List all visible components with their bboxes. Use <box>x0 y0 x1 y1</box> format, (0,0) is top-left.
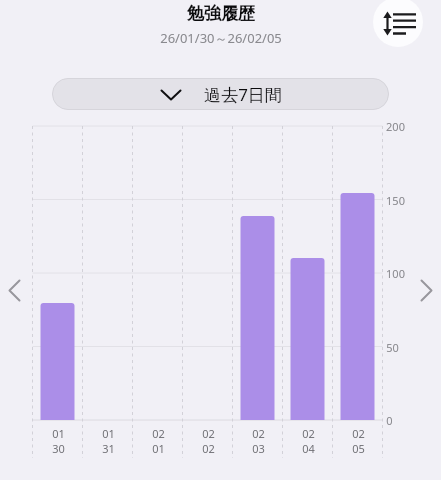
staticText: 30 <box>52 441 65 456</box>
staticText: 26/01/30～26/02/05 <box>160 29 282 47</box>
staticText: 01 <box>102 426 115 441</box>
button[interactable]: 過去7日間 <box>52 78 389 110</box>
staticText: 勉強履歴 <box>187 3 255 24</box>
button[interactable] <box>373 0 423 47</box>
staticText: 02 <box>252 426 265 441</box>
button[interactable] <box>2 272 28 310</box>
staticText: 150 <box>386 193 405 207</box>
staticText: 01 <box>152 441 165 456</box>
staticText: 100 <box>386 266 405 280</box>
staticText: 02 <box>352 426 365 441</box>
staticText: 03 <box>252 441 265 456</box>
staticText: 02 <box>202 441 215 456</box>
staticText: 01 <box>52 426 65 441</box>
staticText: 過去7日間 <box>204 83 282 106</box>
staticText: 04 <box>302 441 315 456</box>
staticText: 0 <box>386 413 393 427</box>
staticText: 02 <box>302 426 315 441</box>
staticText: 200 <box>386 119 405 133</box>
staticText: 02 <box>202 426 215 441</box>
staticText: 31 <box>102 441 115 456</box>
button[interactable] <box>413 272 439 310</box>
staticText: 05 <box>352 441 365 456</box>
staticText: 50 <box>386 340 399 354</box>
staticText: 02 <box>152 426 165 441</box>
